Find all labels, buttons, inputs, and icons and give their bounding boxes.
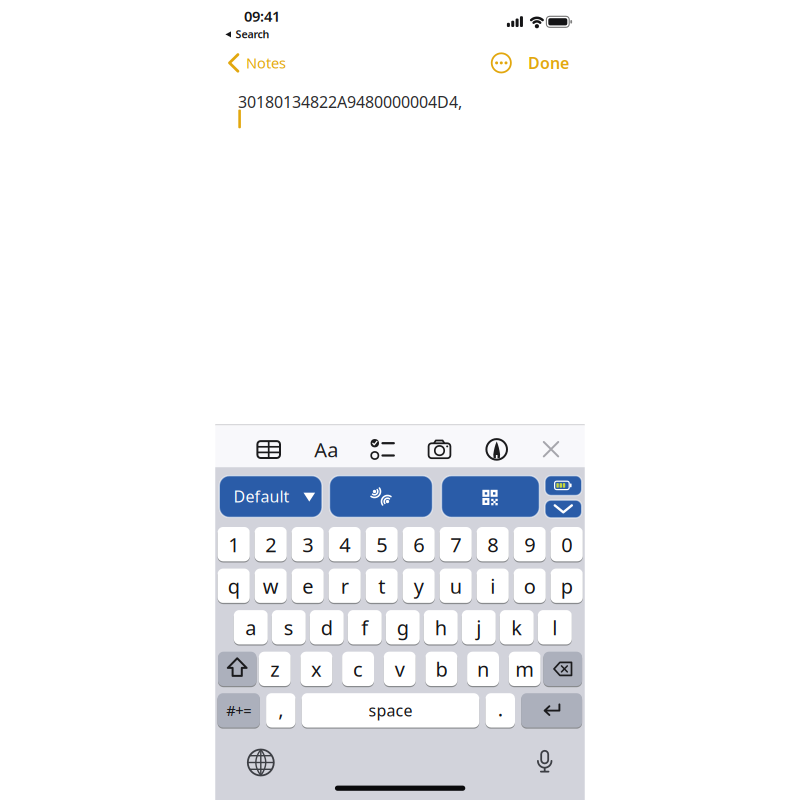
staticText: e [302,573,313,599]
staticText: 9 [524,531,535,558]
staticText: j [476,614,481,641]
staticText: 2 [265,531,276,558]
staticText: m [515,656,534,682]
staticText: n [477,656,489,682]
staticText: g [397,614,409,641]
staticText: k [511,614,522,641]
staticText: space [368,700,412,721]
staticText: c [353,656,363,682]
staticText: 8 [487,531,498,558]
staticText: Search [235,27,269,41]
staticText: z [270,656,279,682]
staticText: p [561,573,573,599]
staticText: Aa [314,436,338,463]
staticText: o [524,573,536,599]
staticText: 0 [561,531,572,558]
staticText: f [361,614,368,641]
staticText: d [321,614,333,641]
staticText: b [435,656,447,682]
staticText: #+= [226,701,251,720]
staticText: Done [528,52,569,73]
staticText: q [228,573,240,599]
staticText: r [341,573,349,599]
staticText: x [311,656,322,682]
staticText: 1 [228,531,239,558]
staticText: l [552,614,557,641]
staticText: 6 [413,531,424,558]
staticText: w [263,573,279,599]
staticText: 3 [302,531,313,558]
staticText: y [414,573,424,599]
staticText: a [245,614,256,641]
staticText: 7 [450,531,461,558]
staticText: Default [233,486,289,507]
staticText: h [435,614,447,641]
staticText: 5 [376,531,387,558]
staticText: 30180134822A9480000004D4, [238,91,462,112]
staticText: Notes [246,53,286,73]
staticText: 4 [339,531,350,558]
staticText: u [450,573,462,599]
staticText: v [395,656,405,682]
staticText: t [378,573,385,599]
staticText: 09:41 [244,6,280,26]
staticText: , [278,695,283,722]
staticText: . [498,695,503,722]
staticText: i [490,573,495,599]
staticText: s [284,614,294,641]
